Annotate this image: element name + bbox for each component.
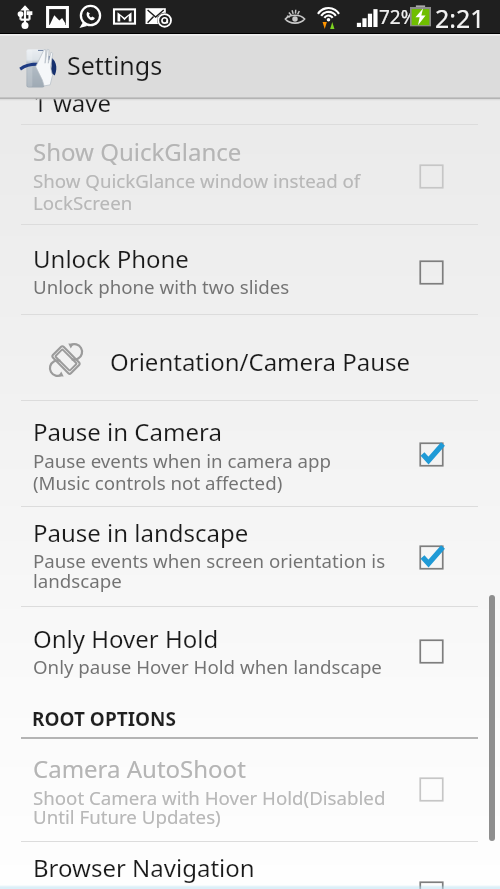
staticText: Browser Navigation [33,851,255,884]
button[interactable] [0,606,500,695]
staticText: Pause in Camera [33,415,222,448]
staticText: 72% [379,4,417,30]
button[interactable] [0,314,500,400]
staticText: Unlock phone with two slides [33,274,290,299]
button[interactable] [0,506,500,606]
button[interactable] [0,224,500,314]
staticText: Camera AutoShoot [33,752,246,785]
staticText: Until Future Updates) [33,804,221,829]
staticText: Shoot Camera with Hover Hold(Disabled [33,785,386,810]
staticText: landscape [33,568,122,593]
staticText: Settings [67,48,163,82]
staticText: Show QuickGlance [33,135,242,168]
staticText: Pause events when screen orientation is [33,548,386,573]
staticText: Only Hover Hold [33,622,219,655]
staticText: (Music controls not affected) [33,470,283,495]
button[interactable] [0,739,500,841]
button[interactable] [0,124,500,224]
staticText: Only pause Hover Hold when landscape [33,654,382,679]
staticText: ROOT OPTIONS [32,706,176,732]
button[interactable]: Settings [0,36,500,97]
staticText: 2:21 [435,1,485,34]
staticText: 1 wave [33,86,112,119]
button[interactable] [0,841,500,889]
staticText: LockScreen [33,190,133,215]
staticText: Orientation/Camera Pause [110,345,411,378]
staticText: Show QuickGlance window instead of [33,168,361,193]
staticText: Unlock Phone [33,242,189,275]
staticText: Pause events when in camera app [33,448,332,473]
staticText: Pause in landscape [33,516,249,549]
button[interactable] [0,400,500,506]
